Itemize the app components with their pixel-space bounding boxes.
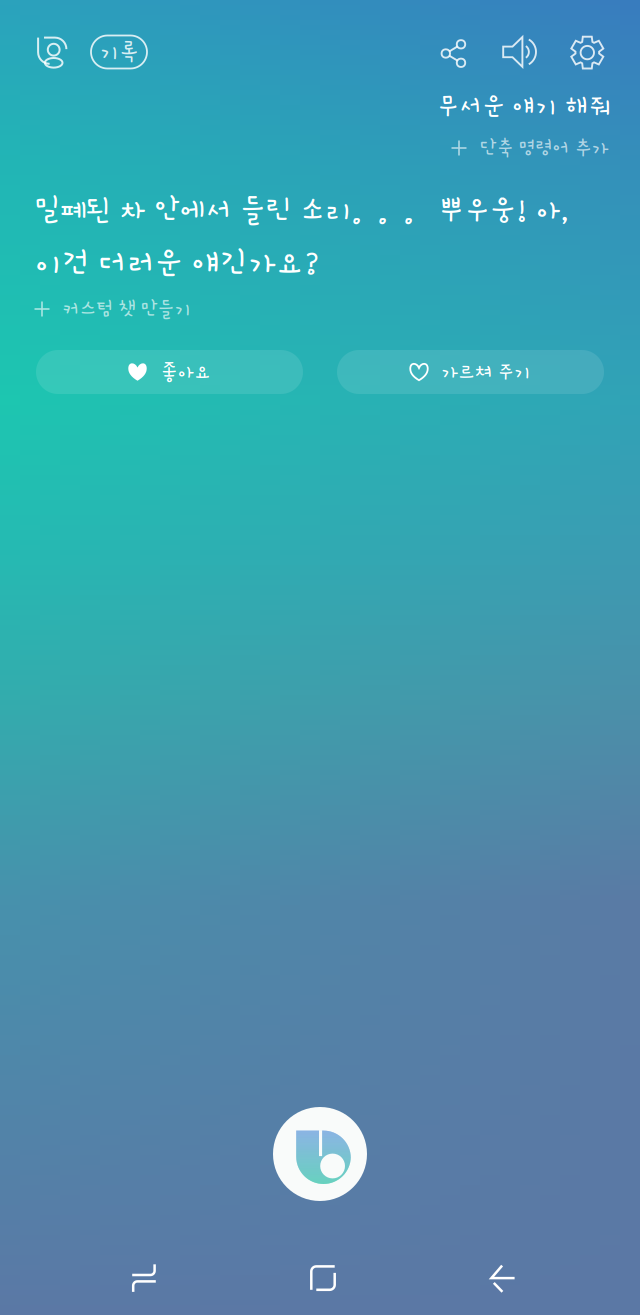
button[interactable]: 가르쳐 주기 [337,350,604,394]
button[interactable]: 기록 [91,35,147,68]
button[interactable]: Recents [105,1247,183,1309]
button[interactable]: Settings [564,30,610,76]
button[interactable]: 커스텀 챗 만들기 [34,294,191,324]
staticText: 기록 [100,40,138,64]
button[interactable]: Sound [497,29,543,75]
staticText: 커스텀 챗 만들기 [62,298,191,320]
staticText: 밀폐된 차 안에서 들린 소리。。。 뿌우웅! 아, [34,194,568,226]
button[interactable]: Share [431,31,477,77]
button[interactable]: 좋아요 [36,350,303,394]
button[interactable]: 단축 명령어 추가 [451,133,608,163]
button[interactable]: Back [464,1247,542,1309]
button[interactable]: Account [30,29,74,73]
staticText: 무서운 얘기 해줘 [436,92,611,120]
staticText: 이건 더러운 얘긴가요? [34,246,320,280]
button[interactable]: Home [284,1247,362,1309]
staticText: 가르쳐 주기 [441,361,531,383]
button[interactable]: Bixby [273,1107,367,1201]
staticText: 단축 명령어 추가 [479,137,608,159]
staticText: 좋아요 [160,361,211,383]
